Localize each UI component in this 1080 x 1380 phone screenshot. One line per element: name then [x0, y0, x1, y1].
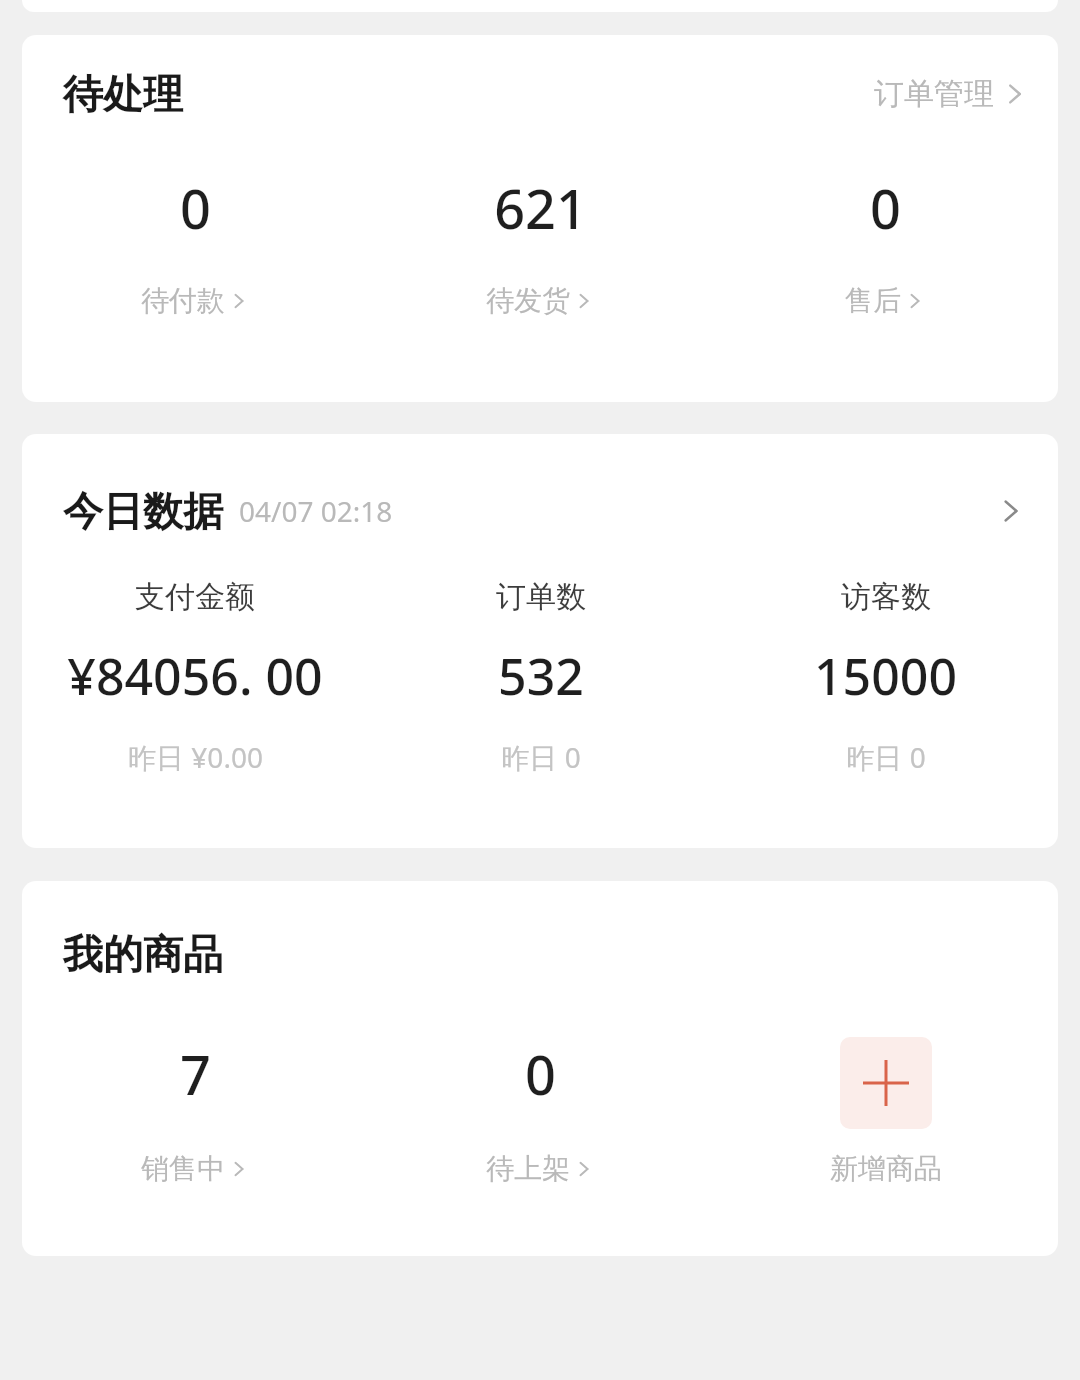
staticText: 昨日 0	[501, 738, 581, 776]
staticText: 订单数	[496, 578, 586, 616]
staticText: 待付款	[141, 283, 225, 318]
staticText: 售后	[845, 283, 901, 318]
button[interactable]: 今日数据	[63, 486, 1028, 536]
staticText: 待处理	[63, 69, 183, 119]
button[interactable]: 0	[368, 1037, 713, 1186]
staticText: 订单管理	[874, 75, 994, 113]
staticText: 15000	[814, 642, 957, 710]
staticText: 621	[494, 171, 587, 245]
staticText: 0	[525, 1037, 556, 1111]
button[interactable]: 7	[22, 1037, 368, 1186]
button[interactable]: 0	[713, 171, 1058, 318]
staticText: 0	[180, 171, 211, 245]
staticText: 我的商品	[63, 929, 223, 979]
staticText: 访客数	[841, 578, 931, 616]
button[interactable]: 访客数	[713, 578, 1058, 776]
button[interactable]: 621	[368, 171, 713, 318]
staticText: 新增商品	[830, 1151, 942, 1186]
staticText: ¥84056. 00	[67, 642, 323, 710]
button[interactable]: 订单数	[368, 578, 713, 776]
staticText: 昨日 0	[846, 738, 926, 776]
staticText: 04/07 02:18	[239, 492, 393, 530]
button[interactable]: 支付金额	[22, 578, 368, 776]
staticText: 昨日 ¥0.00	[128, 738, 263, 776]
staticText: 今日数据	[63, 486, 223, 536]
button[interactable]: 订单管理	[874, 75, 1030, 113]
staticText: 待上架	[486, 1151, 570, 1186]
staticText: 支付金额	[135, 578, 255, 616]
staticText: 销售中	[141, 1151, 225, 1186]
staticText: 0	[870, 171, 901, 245]
staticText: 待发货	[486, 283, 570, 318]
staticText: 7	[180, 1037, 211, 1111]
staticText: 532	[498, 642, 584, 710]
button[interactable]: 0	[22, 171, 368, 318]
button[interactable]: 新增商品	[713, 1037, 1058, 1186]
